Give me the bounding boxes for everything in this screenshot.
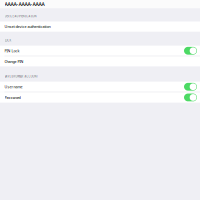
staticText: AAAA-AAAA-AAAA: [4, 1, 44, 8]
button[interactable]: Username: [0, 82, 200, 92]
staticText: Change PIN: [4, 59, 23, 64]
staticText: Password: [4, 95, 20, 100]
button[interactable]: PIN Lock: [0, 46, 200, 56]
button[interactable]: Unset device authentication: [0, 21, 200, 32]
staticText: LOCK: [4, 39, 11, 42]
button[interactable]: Change PIN: [0, 56, 200, 67]
staticText: Unset device authentication: [4, 24, 50, 29]
staticText: Username: [4, 84, 22, 89]
button[interactable]: Password: [0, 92, 200, 103]
staticText: PIN Lock: [4, 48, 19, 53]
staticText: SAVE BROWSER ACCOUNT: [4, 75, 37, 78]
staticText: DEVICE AUTHENTICATION: [4, 14, 36, 18]
